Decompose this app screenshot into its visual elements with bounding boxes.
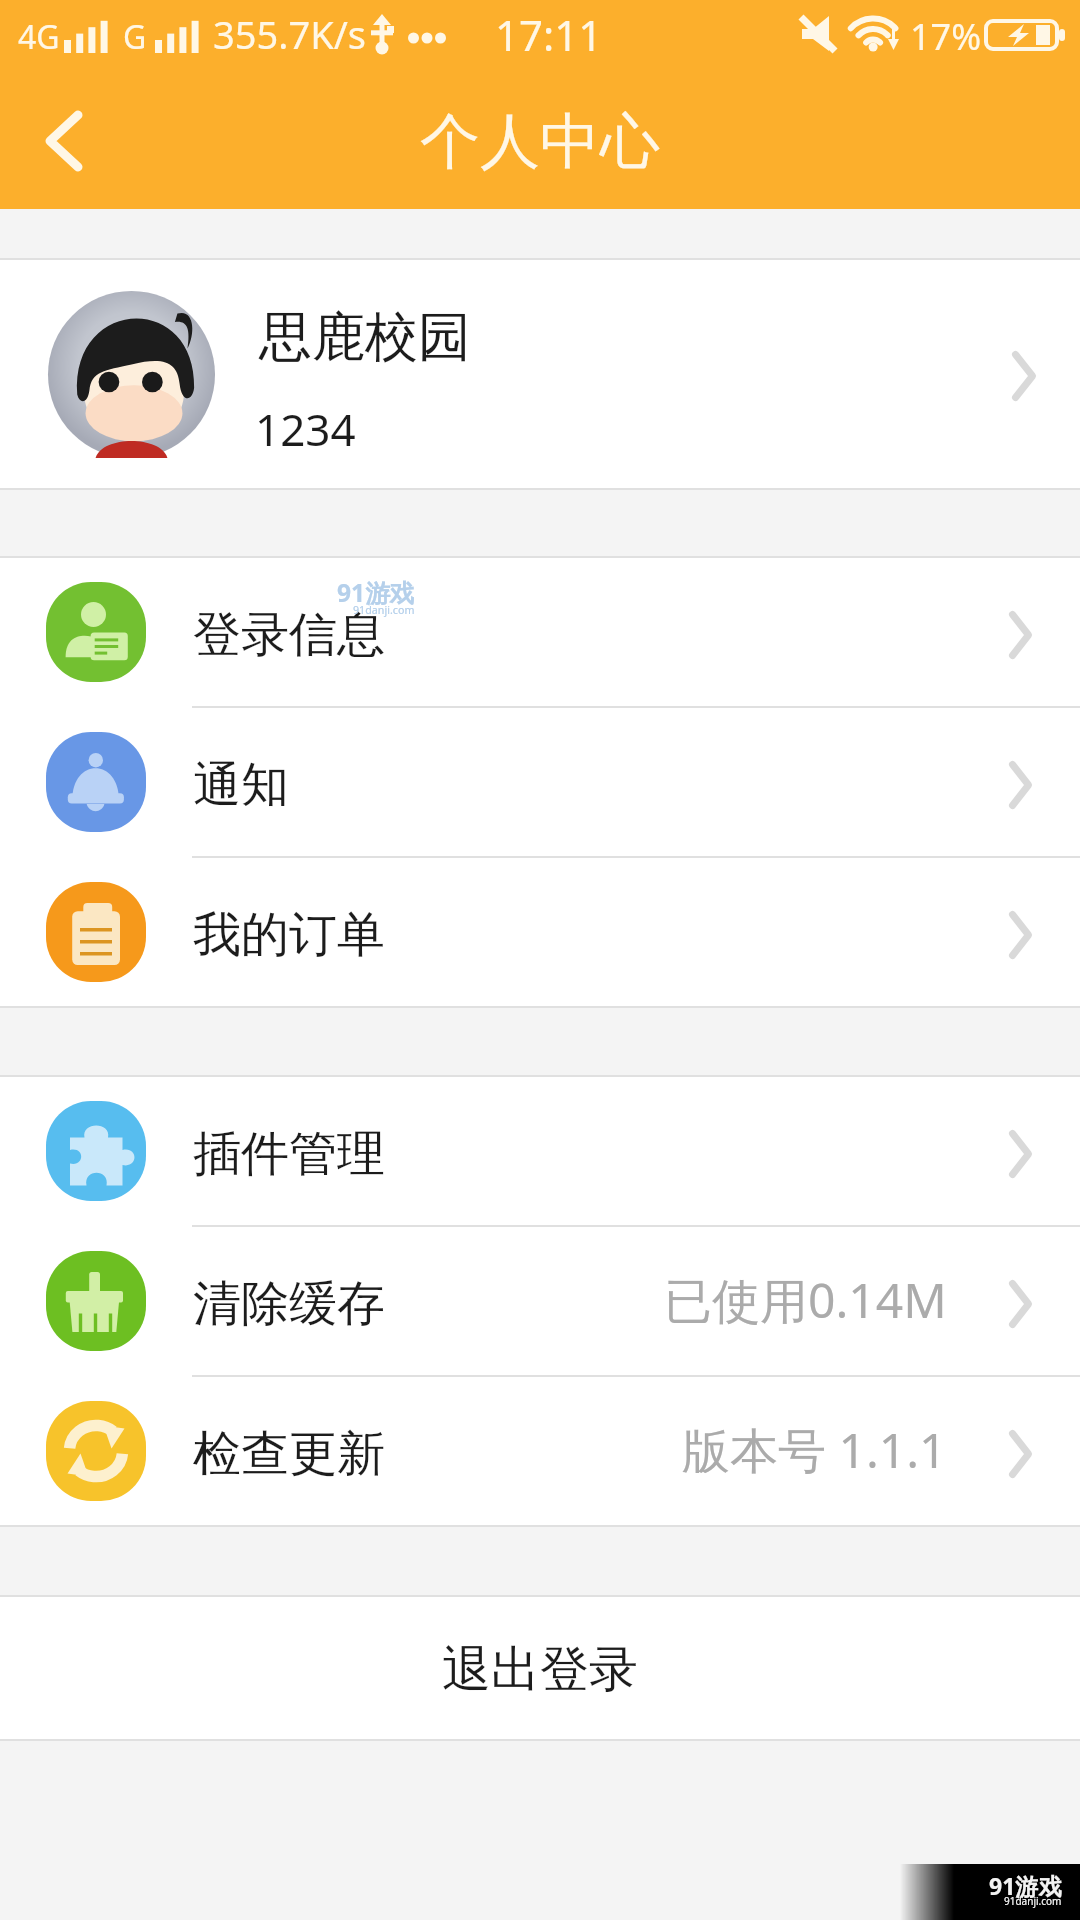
- staticText: 个人中心: [420, 104, 660, 180]
- button[interactable]: Back: [18, 86, 110, 196]
- staticText: 91danji.com: [1004, 1894, 1062, 1908]
- staticText: 我的订单: [193, 905, 385, 965]
- staticText: 思鹿校园: [259, 304, 471, 371]
- button[interactable]: 通知: [0, 708, 1080, 856]
- button[interactable]: 我的订单: [0, 858, 1080, 1006]
- staticText: 通知: [193, 755, 289, 815]
- staticText: G: [123, 15, 147, 59]
- staticText: 17%: [910, 12, 982, 61]
- staticText: 插件管理: [193, 1124, 385, 1184]
- staticText: 退出登录: [442, 1639, 638, 1701]
- staticText: 91游戏: [337, 576, 415, 610]
- button[interactable]: 思鹿校园: [0, 260, 1080, 488]
- staticText: 1234: [255, 399, 356, 459]
- staticText: 登录信息: [193, 605, 385, 665]
- button[interactable]: 插件管理: [0, 1077, 1080, 1225]
- staticText: 91游戏: [989, 1870, 1062, 1901]
- button[interactable]: 退出登录: [0, 1597, 1080, 1739]
- button[interactable]: 清除缓存: [0, 1227, 1080, 1375]
- staticText: 4G: [18, 15, 60, 59]
- staticText: 检查更新: [193, 1424, 385, 1484]
- staticText: 355.7K/s: [213, 8, 366, 60]
- staticText: 版本号 1.1.1: [682, 1417, 947, 1483]
- button[interactable]: 检查更新: [0, 1377, 1080, 1525]
- staticText: 清除缓存: [193, 1274, 385, 1334]
- staticText: 17:11: [495, 6, 603, 63]
- button[interactable]: 登录信息: [0, 558, 1080, 706]
- staticText: 已使用0.14M: [664, 1267, 947, 1333]
- staticText: 91danji.com: [353, 603, 415, 618]
